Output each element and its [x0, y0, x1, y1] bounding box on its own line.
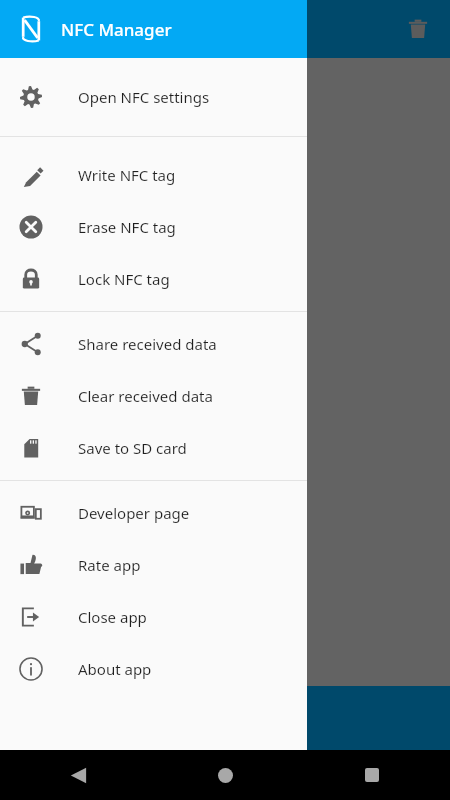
button[interactable]: Rate app	[0, 539, 307, 591]
button[interactable]: NFC	[9, 7, 53, 51]
staticText: Lock NFC tag	[78, 269, 170, 289]
button[interactable]: Back	[56, 753, 100, 797]
staticText: Rate app	[78, 555, 141, 575]
button[interactable]: Write NFC tag	[0, 149, 307, 201]
staticText: Close app	[78, 607, 147, 627]
button[interactable]: Write mode	[0, 686, 450, 750]
button[interactable]: Developer page	[0, 487, 307, 539]
button[interactable]: Home	[203, 753, 247, 797]
button[interactable]: Share received data	[0, 318, 307, 370]
staticText: Developer page	[78, 503, 190, 523]
button[interactable]: Close app	[0, 591, 307, 643]
button[interactable]: Clear received data	[396, 7, 440, 51]
staticText: Erase NFC tag	[78, 217, 176, 237]
button[interactable]: About app	[0, 643, 307, 695]
staticText: Write NFC tag	[78, 165, 176, 185]
button[interactable]: Lock NFC tag	[0, 253, 307, 305]
button[interactable]: Recent apps	[350, 753, 394, 797]
button[interactable]: Erase NFC tag	[0, 201, 307, 253]
staticText: Share received data	[78, 334, 217, 354]
staticText: About app	[78, 659, 152, 679]
staticText: Open NFC settings	[78, 87, 210, 107]
staticText: NFC Manager	[61, 18, 172, 41]
staticText: Save to SD card	[78, 438, 187, 458]
button[interactable]: Save to SD card	[0, 422, 307, 474]
button[interactable]: Clear received data	[0, 370, 307, 422]
staticText: Clear received data	[78, 386, 213, 406]
button[interactable]: Open NFC settings	[0, 71, 307, 123]
